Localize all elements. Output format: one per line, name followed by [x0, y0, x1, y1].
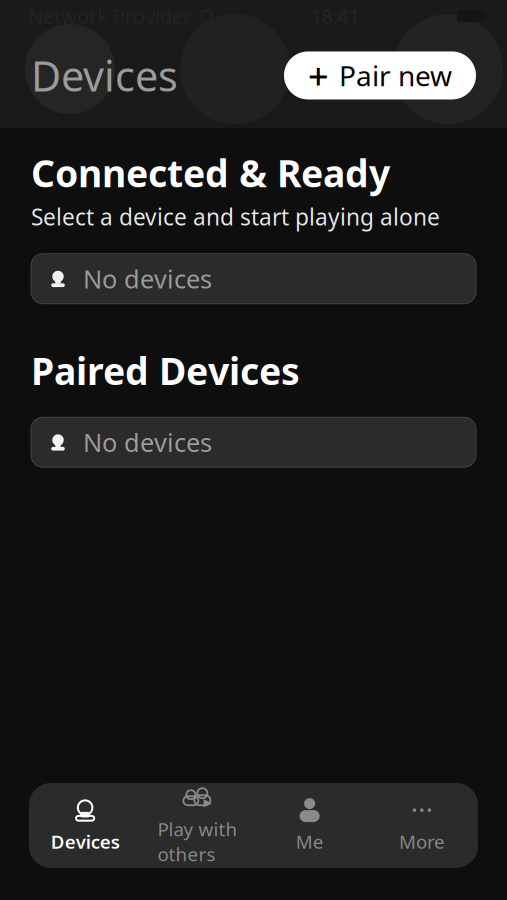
button[interactable]: Devices — [29, 787, 141, 864]
staticText: ▶ — [203, 796, 211, 808]
staticText: Devices — [31, 48, 178, 103]
staticText: Devices — [51, 829, 120, 854]
staticText: Network Provider — [28, 3, 191, 29]
button[interactable]: No devices — [31, 254, 476, 304]
button[interactable]: + — [284, 51, 476, 99]
staticText: Connected & Ready — [31, 148, 390, 198]
button[interactable]: More — [366, 787, 478, 864]
button[interactable]: ▶ — [141, 775, 253, 876]
staticText: Select a device and start playing alone — [31, 202, 440, 232]
staticText: Paired Devices — [31, 346, 300, 395]
button[interactable]: No devices — [31, 417, 476, 467]
staticText: + — [308, 51, 329, 99]
button[interactable]: Me — [253, 787, 366, 864]
staticText: No devices — [83, 425, 212, 459]
staticText: Me — [296, 829, 324, 854]
staticText: More — [399, 829, 445, 854]
staticText: Pair new — [339, 57, 452, 94]
staticText: No devices — [83, 262, 212, 295]
staticText: Play with others — [157, 817, 237, 866]
